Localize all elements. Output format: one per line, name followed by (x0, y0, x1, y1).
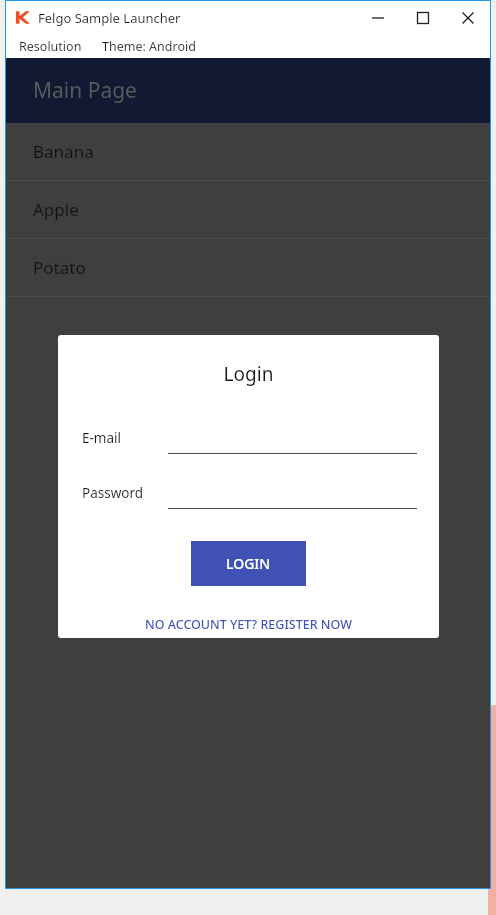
button[interactable]: Potato (6, 239, 490, 297)
staticText: LOGIN (226, 554, 271, 573)
staticText: Login (58, 361, 439, 387)
staticText: Potato (33, 256, 86, 279)
staticText: E-mail (82, 429, 122, 447)
button[interactable]: Minimize (355, 1, 400, 34)
staticText: Main Page (33, 76, 137, 105)
staticText: Theme: Android (102, 38, 196, 55)
button[interactable] (168, 422, 417, 454)
staticText: NO ACCOUNT YET? REGISTER NOW (145, 616, 352, 633)
staticText: Apple (33, 198, 79, 221)
button[interactable]: Close (445, 1, 490, 34)
button[interactable]: Banana (6, 123, 490, 181)
staticText: Banana (33, 140, 94, 163)
button[interactable]: Maximize (400, 1, 445, 34)
button[interactable]: Resolution (17, 36, 84, 57)
button[interactable]: LOGIN (191, 541, 306, 586)
staticText: Resolution (19, 38, 82, 55)
staticText: Password (82, 484, 144, 502)
button[interactable]: Apple (6, 181, 490, 239)
button[interactable] (168, 477, 417, 509)
button[interactable]: NO ACCOUNT YET? REGISTER NOW (139, 612, 358, 637)
button[interactable]: Theme: Android (100, 36, 198, 57)
staticText: Felgo Sample Launcher (38, 9, 181, 27)
